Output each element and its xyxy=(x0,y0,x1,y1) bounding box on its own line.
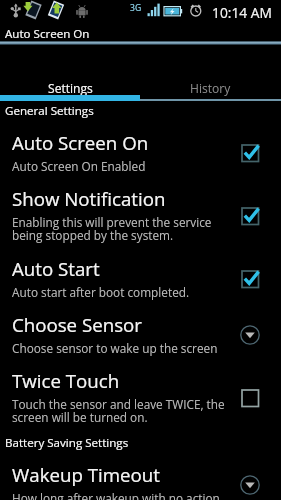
staticText: 10:14 AM xyxy=(212,3,272,22)
staticText: Settings xyxy=(48,80,93,96)
staticText: Touch the sensor and leave TWICE, the xyxy=(12,396,225,412)
staticText: Enabling this will prevent the service xyxy=(12,214,212,230)
button[interactable]: Auto Start xyxy=(0,251,281,307)
button[interactable]: Settings xyxy=(0,72,140,101)
staticText: screen will be turned on. xyxy=(12,409,148,425)
button[interactable]: Twice Touch xyxy=(0,363,281,433)
other: Enabled xyxy=(239,205,261,227)
staticText: 3G xyxy=(130,2,142,14)
button[interactable]: Wakeup Timeout xyxy=(0,457,281,500)
button[interactable]: Choose Sensor xyxy=(0,307,281,363)
other: Open list xyxy=(239,474,261,496)
staticText: History xyxy=(190,80,231,96)
staticText: Auto Start xyxy=(12,256,100,281)
staticText: Wakeup Timeout xyxy=(12,462,160,487)
staticText: Choose Sensor xyxy=(12,312,142,337)
staticText: Auto Screen On xyxy=(12,130,149,155)
button[interactable]: Show Notification xyxy=(0,181,281,251)
other: Disabled xyxy=(239,387,261,409)
staticText: Battery Saving Settings xyxy=(5,435,129,451)
other: Enabled xyxy=(239,268,261,290)
staticText: Choose sensor to wake up the screen xyxy=(12,340,218,356)
button[interactable]: History xyxy=(140,72,281,101)
other: Open list xyxy=(239,324,261,346)
staticText: How long after wakeup with no action xyxy=(12,490,220,500)
button[interactable]: Auto Screen On xyxy=(0,125,281,181)
staticText: Twice Touch xyxy=(12,368,120,393)
staticText: being stopped by the system. xyxy=(12,227,174,243)
staticText: Auto Screen On xyxy=(5,26,90,42)
staticText: Auto Screen On Enabled xyxy=(12,158,146,174)
other: Enabled xyxy=(239,142,261,164)
staticText: Show Notification xyxy=(12,186,166,211)
staticText: General Settings xyxy=(5,103,94,119)
staticText: Auto start after boot completed. xyxy=(12,284,190,300)
